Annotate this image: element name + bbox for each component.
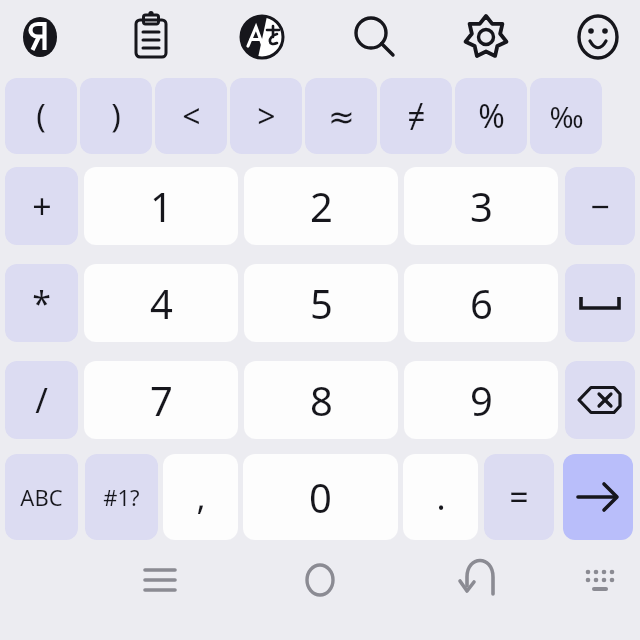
button[interactable]: ) [80, 78, 152, 154]
staticText: = [509, 474, 529, 520]
staticText: ≈ [328, 98, 355, 135]
button[interactable]: Search [347, 10, 401, 64]
staticText: + [32, 183, 52, 229]
staticText: ( [36, 94, 46, 138]
button[interactable]: + [5, 167, 78, 245]
button[interactable]: #1? [85, 454, 158, 540]
staticText: ‰ [549, 97, 584, 136]
button[interactable]: > [230, 78, 302, 154]
button[interactable]: ≈ [305, 78, 377, 154]
staticText: 3 [470, 179, 493, 233]
staticText: 1 [150, 179, 173, 233]
staticText: , [196, 474, 206, 520]
button[interactable]: * [5, 264, 78, 342]
staticText: * [32, 280, 51, 326]
button[interactable]: 5 [244, 264, 398, 342]
button[interactable]: Home [293, 553, 347, 607]
staticText: ABC [20, 482, 63, 512]
button[interactable]: ( [5, 78, 77, 154]
button[interactable]: Enter [563, 454, 633, 540]
button[interactable]: ‰ [530, 78, 602, 154]
button[interactable]: / [5, 361, 78, 439]
button[interactable]: Menu [133, 553, 187, 607]
staticText: 8 [310, 373, 333, 427]
button[interactable]: 2 [244, 167, 398, 245]
button[interactable]: Yandex [13, 10, 67, 64]
button[interactable]: , [163, 454, 238, 540]
button[interactable]: 8 [244, 361, 398, 439]
staticText: < [182, 94, 201, 138]
button[interactable]: Settings [459, 10, 513, 64]
button[interactable]: Space [565, 264, 635, 342]
staticText: ) [111, 94, 121, 138]
staticText: . [436, 474, 446, 520]
button[interactable]: Backspace [565, 361, 635, 439]
button[interactable]: 7 [84, 361, 238, 439]
button[interactable]: < [155, 78, 227, 154]
button[interactable]: = [484, 454, 554, 540]
button[interactable]: Keyboard [573, 553, 627, 607]
staticText: 5 [310, 276, 333, 330]
button[interactable]: 9 [404, 361, 558, 439]
staticText: #1? [103, 482, 140, 512]
staticText: / [35, 377, 48, 423]
staticText: ≠ [407, 94, 426, 138]
button[interactable]: 4 [84, 264, 238, 342]
button[interactable]: ≠ [380, 78, 452, 154]
button[interactable]: Emoji [571, 10, 625, 64]
staticText: > [257, 94, 276, 138]
button[interactable]: 1 [84, 167, 238, 245]
button[interactable]: Clipboard [124, 10, 178, 64]
staticText: 0 [309, 470, 332, 524]
button[interactable]: − [565, 167, 635, 245]
button[interactable]: % [455, 78, 527, 154]
staticText: 6 [470, 276, 493, 330]
button[interactable]: 0 [243, 454, 398, 540]
button[interactable]: Back [453, 553, 507, 607]
staticText: % [478, 94, 505, 138]
button[interactable]: . [403, 454, 478, 540]
button[interactable]: 6 [404, 264, 558, 342]
staticText: − [590, 183, 610, 229]
button[interactable]: ABC [5, 454, 78, 540]
staticText: 7 [150, 373, 173, 427]
staticText: 2 [310, 179, 333, 233]
staticText: 4 [150, 276, 173, 330]
staticText: 9 [470, 373, 493, 427]
button[interactable]: Translate [235, 10, 289, 64]
button[interactable]: 3 [404, 167, 558, 245]
